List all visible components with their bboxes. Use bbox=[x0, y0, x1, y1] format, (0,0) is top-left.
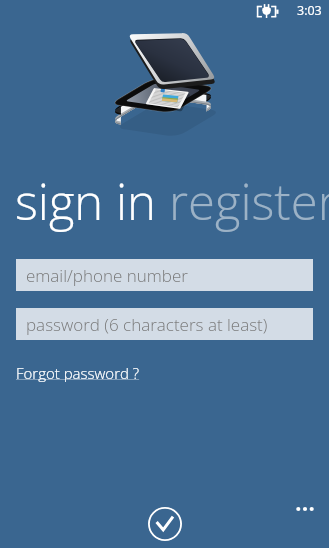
staticText: 3:03 bbox=[297, 2, 322, 19]
button[interactable]: Sign in bbox=[148, 507, 182, 541]
button[interactable]: email/phone number bbox=[16, 259, 313, 291]
staticText: password (6 characters at least) bbox=[26, 313, 268, 336]
button[interactable]: password (6 characters at least) bbox=[16, 308, 313, 340]
button[interactable]: More options bbox=[289, 493, 321, 525]
staticText: email/phone number bbox=[26, 264, 188, 287]
staticText: register bbox=[169, 168, 329, 235]
button[interactable]: Forgot password ? bbox=[16, 363, 140, 383]
staticText: sign in bbox=[15, 168, 169, 235]
